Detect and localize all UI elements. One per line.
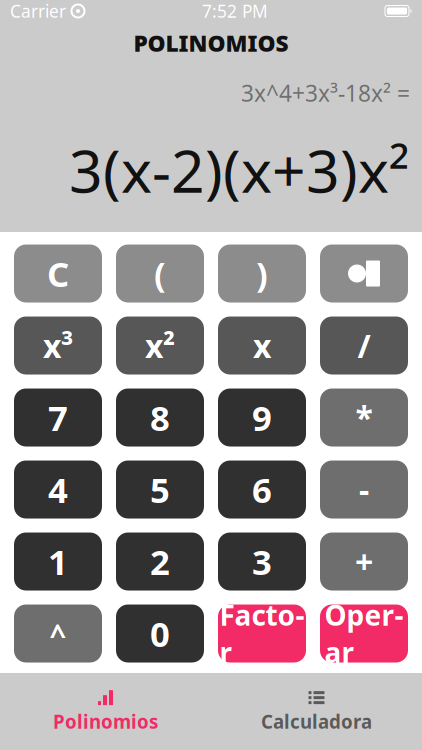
button[interactable]: x (218, 316, 306, 374)
button[interactable]: Factor (218, 604, 306, 662)
staticText: x² (145, 324, 175, 367)
staticText: ( (154, 250, 166, 296)
staticText: 7 (48, 394, 68, 440)
button[interactable]: - (320, 460, 408, 518)
staticText: * (355, 396, 372, 439)
staticText: Polinomios (53, 709, 158, 734)
button[interactable]: x³ (14, 316, 102, 374)
staticText: Factor (219, 596, 304, 671)
button[interactable]: C (14, 244, 102, 302)
staticText: 0 (150, 610, 170, 656)
staticText: Carrier (10, 0, 66, 22)
staticText: 3(x-2)(x+3)x² (69, 131, 410, 209)
button[interactable]: ) (218, 244, 306, 302)
button[interactable]: Polinomios (0, 681, 211, 741)
button[interactable]: Backspace (320, 244, 408, 302)
staticText: x (253, 324, 271, 367)
staticText: 2 (150, 538, 170, 584)
button[interactable]: x² (116, 316, 204, 374)
staticText: POLINOMIOS (133, 28, 288, 58)
button[interactable]: 6 (218, 460, 306, 518)
staticText: 8 (150, 394, 170, 440)
button[interactable]: 8 (116, 388, 204, 446)
staticText: ) (256, 250, 268, 296)
button[interactable]: Operar (320, 604, 408, 662)
staticText: 3x^4+3x³-18x² = (241, 78, 410, 108)
staticText: 3 (252, 538, 272, 584)
staticText: 1 (48, 538, 68, 584)
staticText: C (47, 250, 69, 296)
button[interactable]: + (320, 532, 408, 590)
staticText: x³ (43, 324, 73, 367)
button[interactable]: 3 (218, 532, 306, 590)
button[interactable]: 0 (116, 604, 204, 662)
staticText: - (359, 468, 369, 511)
button[interactable]: 1 (14, 532, 102, 590)
button[interactable]: 2 (116, 532, 204, 590)
staticText: 5 (150, 466, 170, 512)
button[interactable]: * (320, 388, 408, 446)
staticText: 6 (252, 466, 272, 512)
staticText: ^ (49, 614, 66, 653)
button[interactable]: 9 (218, 388, 306, 446)
button[interactable]: 4 (14, 460, 102, 518)
staticText: Operar (324, 596, 403, 671)
staticText: 7:52 PM (202, 0, 268, 22)
staticText: 4 (48, 466, 68, 512)
staticText: Calculadora (261, 709, 372, 734)
staticText: / (357, 324, 370, 367)
button[interactable]: 5 (116, 460, 204, 518)
staticText: + (355, 540, 373, 583)
button[interactable]: 7 (14, 388, 102, 446)
button[interactable]: Calculadora (211, 681, 422, 741)
button[interactable]: ( (116, 244, 204, 302)
button[interactable]: ^ (14, 604, 102, 662)
staticText: 9 (252, 394, 272, 440)
button[interactable]: / (320, 316, 408, 374)
